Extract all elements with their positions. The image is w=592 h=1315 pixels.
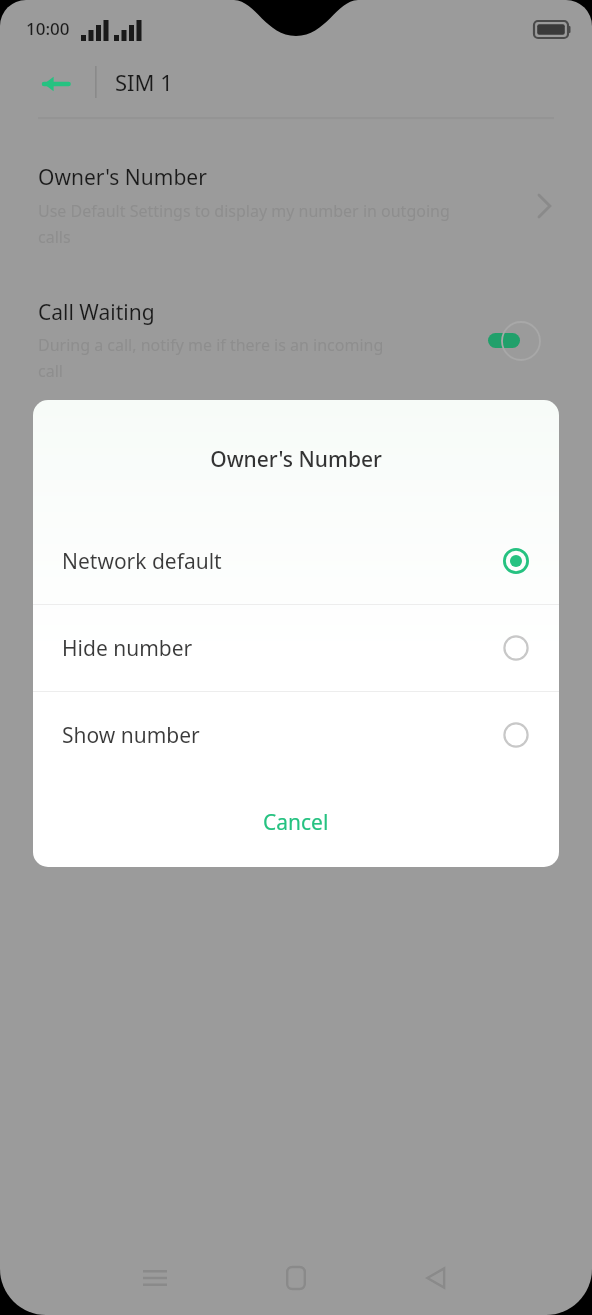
staticText: Hide number: [62, 634, 193, 663]
staticText: Network default: [62, 547, 222, 576]
staticText: Owner's Number: [210, 445, 382, 474]
staticText: Cancel: [263, 808, 329, 837]
button[interactable]: Hide number: [33, 605, 559, 691]
button[interactable]: Recents: [125, 1248, 185, 1308]
button[interactable]: Back: [406, 1248, 466, 1308]
staticText: During a call, notify me if there is an …: [38, 334, 384, 382]
staticText: Owner's Number: [38, 163, 207, 192]
button[interactable]: Cancel: [33, 778, 559, 867]
staticText: Show number: [62, 721, 200, 750]
staticText: SIM 1: [115, 67, 173, 97]
button[interactable]: Network default: [33, 518, 559, 604]
button[interactable]: Back: [30, 58, 82, 110]
staticText: Call Waiting: [38, 298, 155, 327]
staticText: Use Default Settings to display my numbe…: [38, 200, 450, 248]
staticText: 10:00: [26, 17, 70, 40]
button[interactable]: Show number: [33, 692, 559, 778]
button[interactable]: Home: [266, 1248, 326, 1308]
